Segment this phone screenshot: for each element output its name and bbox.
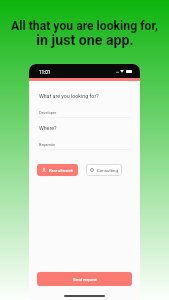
button[interactable]: Recruitment	[37, 164, 78, 176]
button[interactable]: Send request	[37, 272, 132, 286]
staticText: in just one app.	[36, 32, 134, 49]
button[interactable]: Consulting	[86, 164, 122, 176]
staticText: Recruitment	[49, 168, 73, 173]
staticText: Bayamón	[39, 142, 56, 147]
staticText: 11:01	[39, 70, 51, 75]
staticText: What are you looking for?	[39, 93, 99, 99]
staticText: Developer	[39, 110, 57, 115]
staticText: Send request	[73, 277, 97, 282]
staticText: All that you are looking for,	[11, 19, 158, 33]
staticText: Where?	[39, 125, 57, 131]
staticText: Consulting	[97, 168, 118, 173]
